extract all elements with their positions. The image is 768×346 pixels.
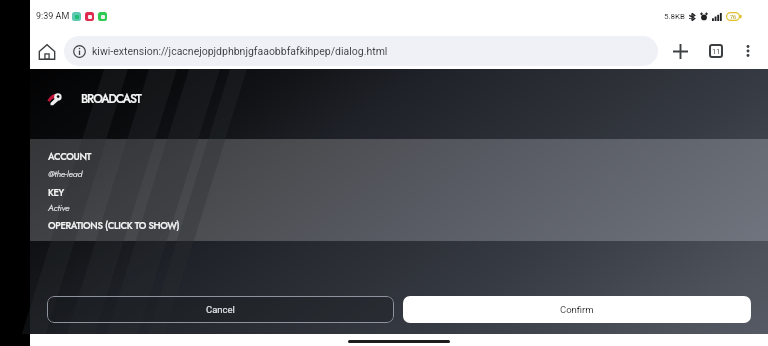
staticText: BROADCAST <box>81 90 141 107</box>
staticText: Cancel <box>206 304 235 315</box>
staticText: 76 <box>730 14 737 20</box>
staticText: @the-lead <box>48 167 83 180</box>
button[interactable]: New tab <box>665 36 695 66</box>
staticText: Confirm <box>560 304 594 315</box>
button[interactable]: Confirm <box>403 296 751 323</box>
button[interactable]: More options <box>733 36 763 66</box>
button[interactable]: Tabs <box>701 36 731 66</box>
staticText: 9:39 AM <box>36 11 70 22</box>
staticText: ACCOUNT <box>48 150 92 164</box>
staticText: 11 <box>712 47 721 56</box>
button[interactable]: Home <box>34 39 59 64</box>
staticText: KEY <box>48 186 64 200</box>
staticText: 5.8KB <box>664 12 686 21</box>
staticText: Active <box>48 201 70 214</box>
button[interactable]: kiwi-extension://jcacnejopjdphbnjgfaaobb… <box>64 36 658 66</box>
button[interactable]: Cancel <box>47 296 394 323</box>
staticText: kiwi-extension://jcacnejopjdphbnjgfaaobb… <box>92 45 388 57</box>
button[interactable]: OPERATIONS (CLICK TO SHOW) <box>48 219 180 233</box>
